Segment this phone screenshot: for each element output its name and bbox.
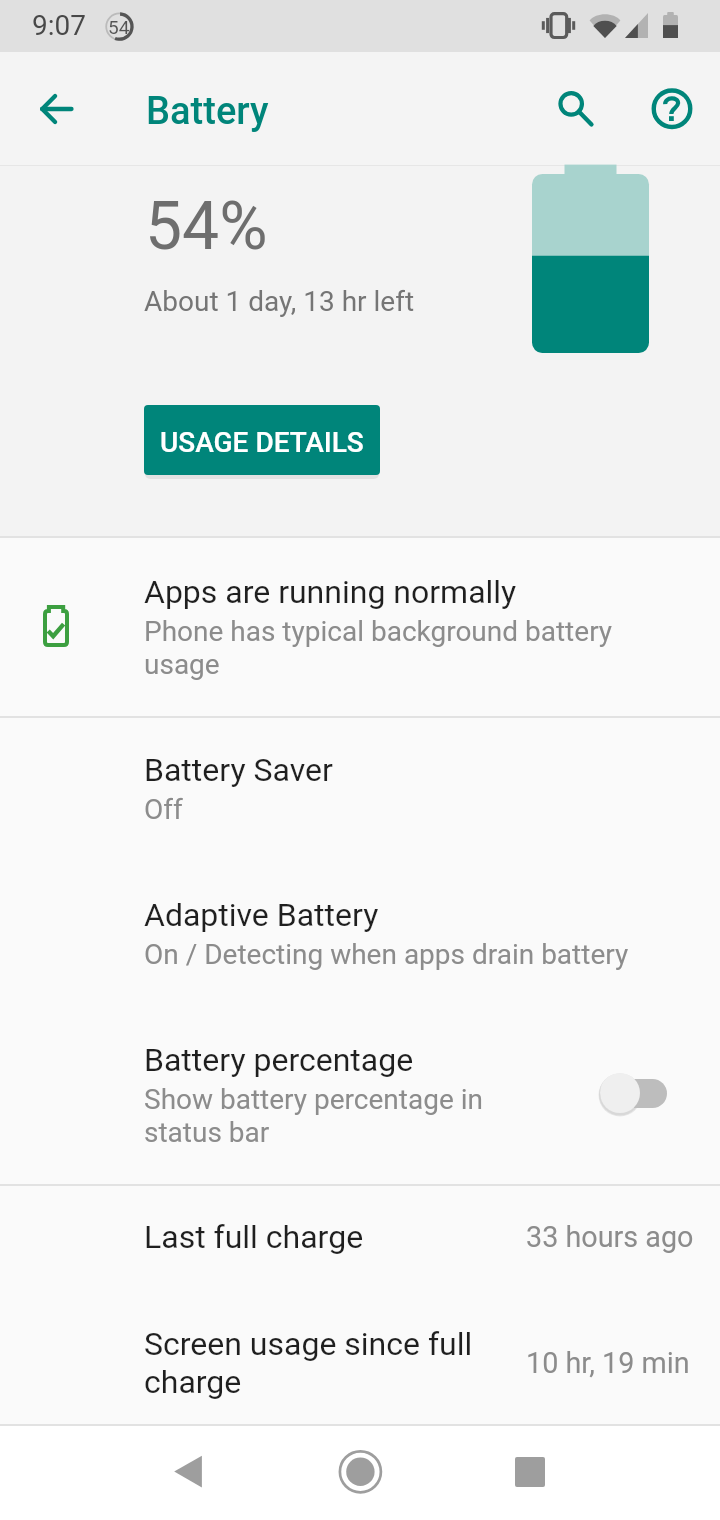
- staticText: 54: [108, 16, 130, 38]
- staticText: On / Detecting when apps drain battery: [144, 938, 629, 971]
- button[interactable]: Navigate up: [17, 69, 97, 149]
- staticText: Battery Saver: [144, 751, 333, 789]
- staticText: USAGE DETAILS: [160, 426, 364, 459]
- button[interactable]: USAGE DETAILS: [144, 405, 380, 475]
- button[interactable]: Back: [118, 1426, 258, 1520]
- button[interactable]: [0, 1292, 720, 1424]
- staticText: 10 hr, 19 min: [526, 1346, 690, 1380]
- button[interactable]: Search: [532, 69, 612, 149]
- staticText: 33 hours ago: [526, 1220, 694, 1254]
- staticText: Battery percentage: [144, 1041, 414, 1079]
- staticText: 54%: [145, 188, 268, 265]
- button[interactable]: [0, 1186, 720, 1292]
- staticText: Show battery percentage in status bar: [144, 1083, 506, 1149]
- staticText: Last full charge: [144, 1218, 364, 1256]
- button[interactable]: Home: [290, 1426, 430, 1520]
- staticText: Off: [144, 793, 183, 826]
- staticText: Phone has typical background battery usa…: [144, 615, 626, 681]
- staticText: Apps are running normally: [144, 573, 517, 611]
- button[interactable]: [0, 718, 720, 898]
- button[interactable]: Help: [632, 69, 712, 149]
- button[interactable]: [0, 898, 720, 1043]
- staticText: Screen usage since full charge: [144, 1325, 496, 1401]
- staticText: About 1 day, 13 hr left: [144, 285, 415, 318]
- staticText: Adaptive Battery: [144, 896, 379, 934]
- button[interactable]: Battery percentage toggle: [588, 1063, 684, 1123]
- button[interactable]: [0, 1043, 720, 1184]
- button[interactable]: Recent apps: [459, 1426, 599, 1520]
- staticText: 9:07: [32, 9, 86, 42]
- button[interactable]: [0, 538, 720, 716]
- staticText: Battery: [146, 89, 269, 134]
